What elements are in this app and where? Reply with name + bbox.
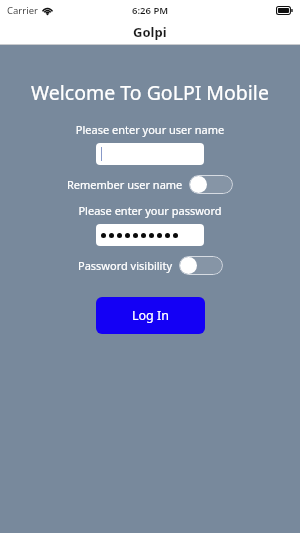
button[interactable] xyxy=(96,224,204,246)
button[interactable]: Toggle xyxy=(189,175,233,194)
staticText: Please enter your password xyxy=(0,203,300,218)
staticText: Please enter your user name xyxy=(0,122,300,137)
staticText: Remember user name xyxy=(67,177,183,192)
staticText: Welcome To GoLPI Mobile xyxy=(0,79,300,106)
staticText: Golpi xyxy=(133,23,167,41)
staticText: 6:26 PM xyxy=(132,4,169,17)
button[interactable] xyxy=(96,143,204,165)
button[interactable]: Toggle xyxy=(179,256,223,275)
button[interactable]: Log In xyxy=(96,297,205,334)
staticText: Carrier xyxy=(7,4,38,17)
staticText: Password visibility xyxy=(78,258,173,273)
staticText: Log In xyxy=(132,307,170,324)
